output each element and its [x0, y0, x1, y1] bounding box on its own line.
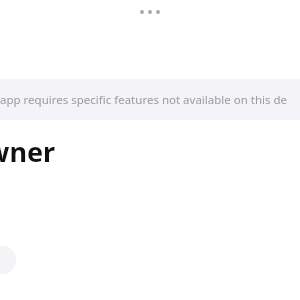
- staticText: app requires specific features not avail…: [0, 92, 288, 108]
- button[interactable]: More options: [130, 4, 170, 20]
- button[interactable]: owner: [0, 133, 56, 167]
- button[interactable]: app requires specific features not avail…: [0, 79, 300, 120]
- staticText: owner: [0, 133, 56, 167]
